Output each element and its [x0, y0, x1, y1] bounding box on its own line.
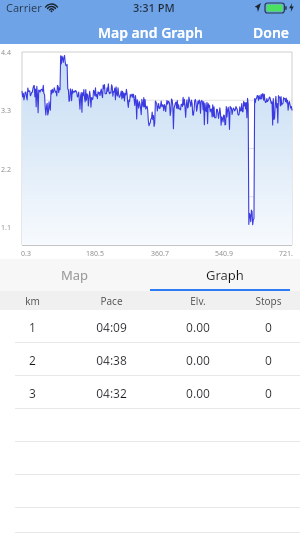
staticText: 3.3 [1, 106, 11, 116]
staticText: 180.5 [86, 249, 104, 259]
button[interactable] [0, 442, 300, 475]
staticText: 1 [29, 319, 36, 335]
staticText: Map and Graph [98, 23, 203, 42]
staticText: Done [253, 23, 290, 41]
button[interactable]: 1 [0, 310, 300, 343]
staticText: 0 [265, 352, 272, 368]
button[interactable]: Map [0, 259, 150, 291]
staticText: 360.7 [151, 249, 169, 259]
button[interactable]: Done [243, 20, 300, 44]
staticText: 3:31 PM [133, 0, 175, 15]
staticText: 0 [265, 385, 272, 401]
staticText: 0 [265, 319, 272, 335]
staticText: 0.3 [21, 249, 31, 259]
staticText: 0.00 [186, 352, 210, 368]
staticText: 3 [29, 385, 36, 401]
staticText: Elv. [190, 294, 206, 308]
staticText: 1.1 [1, 223, 11, 233]
staticText: 04:32 [96, 385, 127, 401]
button[interactable] [0, 409, 300, 442]
button[interactable]: 2 [0, 343, 300, 376]
staticText: km [25, 294, 40, 308]
staticText: Graph [206, 266, 244, 284]
button[interactable]: 3 [0, 376, 300, 409]
staticText: 2.2 [1, 165, 11, 175]
staticText: 2 [29, 352, 36, 368]
staticText: 0.00 [186, 319, 210, 335]
staticText: 4.4 [1, 48, 11, 58]
staticText: 04:38 [96, 352, 127, 368]
staticText: Carrier [6, 0, 42, 15]
button[interactable] [0, 475, 300, 508]
staticText: Stops [255, 294, 282, 308]
staticText: Map [61, 266, 89, 284]
staticText: 0.00 [186, 385, 210, 401]
staticText: 540.9 [215, 249, 233, 259]
button[interactable]: Graph [150, 259, 300, 291]
staticText: Pace [100, 294, 123, 308]
staticText: 721. [279, 249, 293, 259]
staticText: 04:09 [96, 319, 127, 335]
button[interactable] [0, 508, 300, 533]
